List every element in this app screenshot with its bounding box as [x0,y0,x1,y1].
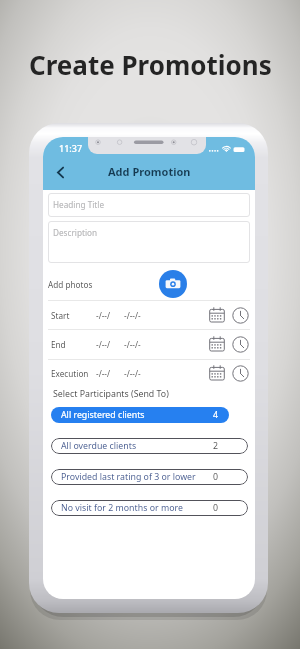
staticText: Heading Title [53,199,105,210]
staticText: Select Participants (Send To) [53,388,169,400]
button[interactable] [51,469,248,485]
staticText: 4 [213,409,219,421]
button[interactable] [51,500,248,516]
button[interactable]: End [43,329,255,359]
staticText: 11:37 [59,142,83,154]
staticText: -/--/ [96,310,111,321]
staticText: -/--/ [96,339,111,350]
staticText: 0 [213,502,219,514]
staticText: Create Promotions [29,47,272,82]
staticText: Add photos [48,279,93,290]
staticText: -/--/- [124,310,141,321]
button[interactable]: Start [43,300,255,330]
staticText: 0 [213,471,219,483]
button[interactable]: Heading Title [48,193,250,217]
staticText: -/--/ [96,368,111,379]
staticText: 2 [213,440,219,452]
staticText: -/--/- [124,339,141,350]
button[interactable]: Add photo [159,270,187,298]
staticText: Add Promotion [108,164,191,179]
button[interactable] [51,438,248,454]
staticText: Description [53,227,98,238]
button[interactable]: Description [48,221,250,263]
staticText: Execution [51,368,89,379]
staticText: -/--/- [124,368,141,379]
staticText: Start [51,310,70,321]
staticText: All registered clients [61,409,145,421]
button[interactable]: Execution [43,359,255,387]
staticText: Provided last rating of 3 or lower [61,471,196,483]
button[interactable]: Back [48,160,72,184]
button[interactable] [51,407,229,423]
staticText: End [51,339,66,350]
staticText: No visit for 2 months or more [61,502,183,514]
staticText: All overdue clients [61,440,137,452]
